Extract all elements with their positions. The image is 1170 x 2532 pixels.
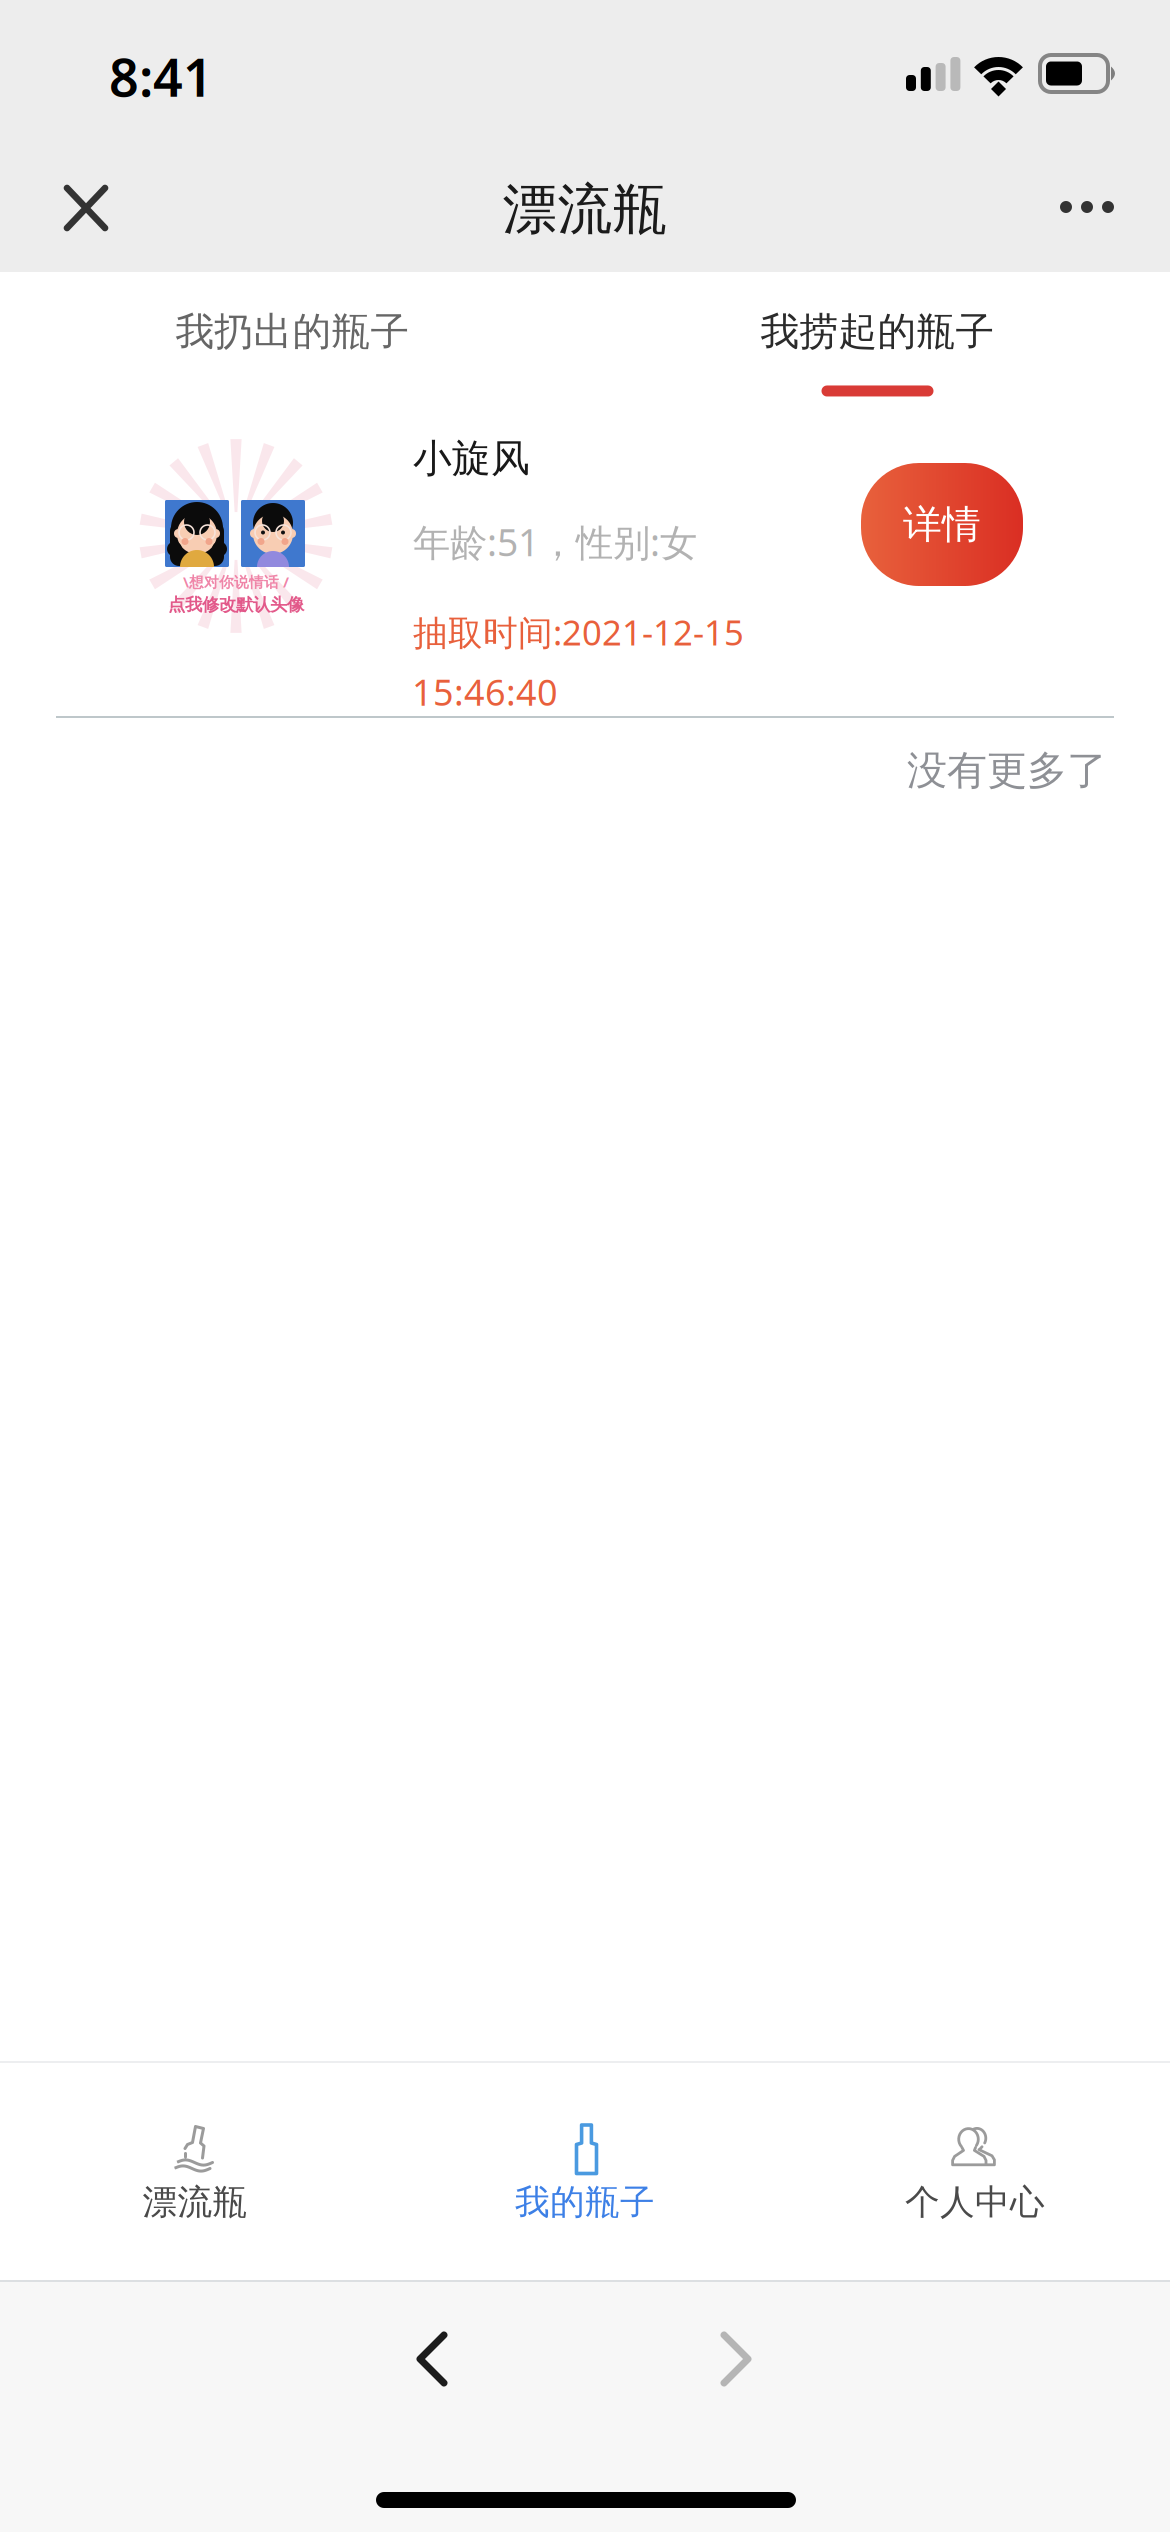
staticText: 我捞起的瓶子 [760, 308, 994, 355]
button[interactable]: 我捞起的瓶子 [585, 272, 1170, 430]
button[interactable]: 前进 [696, 2307, 776, 2411]
button[interactable]: 返回 [392, 2307, 472, 2411]
staticText: 漂流瓶 [502, 176, 667, 243]
button[interactable]: 详情 [861, 463, 1023, 586]
staticText: 没有更多了 [907, 746, 1107, 795]
staticText: 8:41 [109, 42, 213, 111]
button[interactable]: 我扔出的瓶子 [0, 272, 585, 430]
staticText: 个人中心 [905, 2181, 1045, 2224]
staticText: 我扔出的瓶子 [175, 308, 409, 355]
staticText: 抽取时间:2021-12-15 [413, 609, 744, 655]
staticText: 点我修改默认头像 [168, 594, 304, 615]
staticText: 年龄:51，性别:女 [413, 517, 697, 567]
staticText: 小旋风 [413, 435, 530, 482]
staticText: \想对你说情话 / [183, 572, 289, 591]
staticText: 漂流瓶 [142, 2181, 247, 2224]
button[interactable]: 个人中心 [780, 2061, 1170, 2282]
staticText: 详情 [903, 501, 981, 548]
staticText: 15:46:40 [412, 668, 558, 716]
button[interactable]: 我的瓶子 [390, 2061, 780, 2282]
staticText: 我的瓶子 [515, 2181, 655, 2224]
button[interactable]: 更多 [1034, 157, 1140, 257]
button[interactable]: 关闭 [37, 158, 135, 258]
button[interactable]: 漂流瓶 [0, 2061, 390, 2282]
